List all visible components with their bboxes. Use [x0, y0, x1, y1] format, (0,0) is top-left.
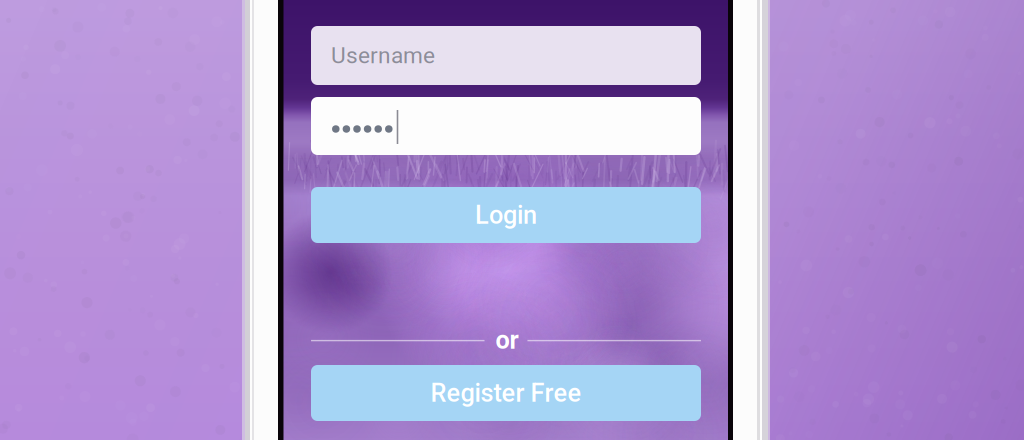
- staticText: or: [495, 325, 518, 355]
- staticText: Login: [475, 200, 537, 230]
- button[interactable]: [311, 97, 701, 155]
- staticText: Username: [331, 42, 435, 69]
- button[interactable]: Register Free: [311, 365, 701, 421]
- button[interactable]: Username: [311, 26, 701, 85]
- button[interactable]: Login: [311, 187, 701, 243]
- staticText: Register Free: [430, 378, 581, 408]
